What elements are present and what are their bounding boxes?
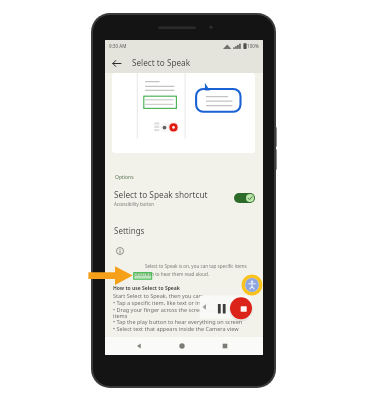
staticText: Start Select to Speak, then you can: xyxy=(113,292,204,299)
staticText: items xyxy=(113,312,128,319)
button[interactable]: Select to Speak shortcut xyxy=(105,185,263,211)
button[interactable]: Recent apps xyxy=(218,339,232,353)
button[interactable]: Home xyxy=(175,339,189,353)
staticText: Settings xyxy=(114,225,145,236)
staticText: Select to Speak is on, you can tap speci… xyxy=(145,263,247,269)
staticText: 9:30 AM xyxy=(109,43,127,49)
button[interactable]: Back xyxy=(132,339,146,353)
staticText: Options xyxy=(115,174,134,181)
staticText: • Tap a specific item, like text or imag… xyxy=(113,299,212,306)
staticText: • Tap the play button to hear everything… xyxy=(113,318,243,325)
staticText: 100% xyxy=(247,43,259,49)
button[interactable]: Information xyxy=(116,247,124,255)
staticText: Accessibility button xyxy=(114,201,154,207)
button[interactable]: Select to Speak shortcut toggle xyxy=(234,193,255,203)
staticText: How to use Select to Speak xyxy=(113,285,180,292)
staticText: to hear them read aloud. xyxy=(154,271,209,277)
staticText: Select to Speak xyxy=(132,57,191,68)
staticText: Select to Speak shortcut xyxy=(114,189,208,200)
button[interactable]: Accessibility button xyxy=(241,274,263,296)
staticText: onscreen xyxy=(134,271,154,277)
staticText: • Drag your finger across the screen to … xyxy=(113,306,252,313)
staticText: • Select text that appears inside the Ca… xyxy=(113,325,239,332)
button[interactable]: Back xyxy=(109,56,123,70)
